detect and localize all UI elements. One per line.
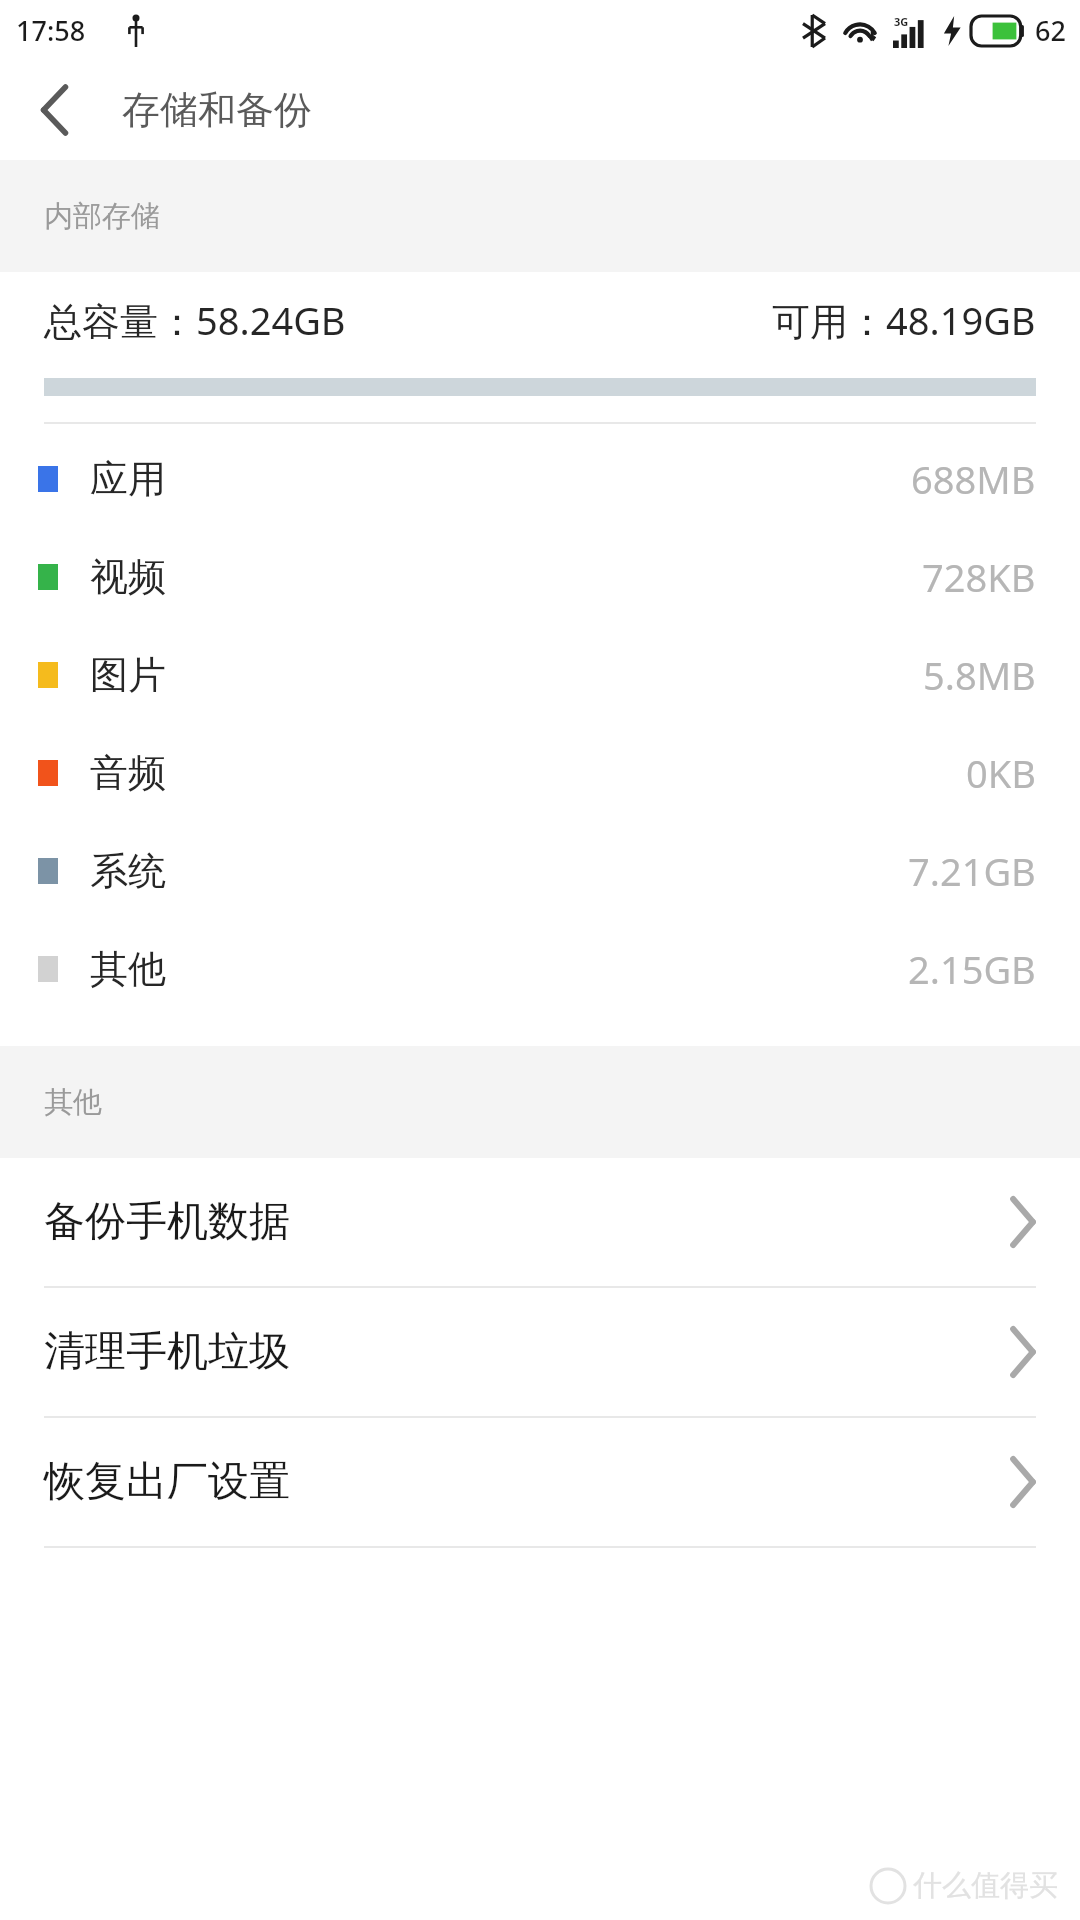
staticText: 系统 xyxy=(90,847,166,895)
staticText: 可用：48.19GB xyxy=(772,294,1036,346)
staticText: 应用 xyxy=(90,455,166,503)
staticText: 0KB xyxy=(966,747,1036,799)
button[interactable]: 其他 xyxy=(0,920,1080,1018)
staticText: 视频 xyxy=(90,553,166,601)
button[interactable]: 清理手机垃圾 xyxy=(0,1288,1080,1416)
staticText: 图片 xyxy=(90,651,166,699)
staticText: 688MB xyxy=(911,453,1036,505)
staticText: 备份手机数据 xyxy=(44,1196,290,1248)
button[interactable]: 恢复出厂设置 xyxy=(0,1418,1080,1546)
staticText: 恢复出厂设置 xyxy=(44,1456,290,1508)
staticText: 17:58 xyxy=(16,12,86,49)
staticText: 3G xyxy=(894,14,909,29)
staticText: 内部存储 xyxy=(44,198,160,235)
button[interactable]: 图片 xyxy=(0,626,1080,724)
staticText: 其他 xyxy=(44,1084,102,1121)
staticText: 其他 xyxy=(90,945,166,993)
staticText: 存储和备份 xyxy=(122,86,312,134)
button[interactable]: 备份手机数据 xyxy=(0,1158,1080,1286)
staticText: 总容量：58.24GB xyxy=(44,294,346,346)
staticText: 728KB xyxy=(922,551,1036,603)
button[interactable]: 音频 xyxy=(0,724,1080,822)
button[interactable]: Back xyxy=(16,71,94,149)
staticText: 62 xyxy=(1035,12,1066,49)
staticText: 什么值得买 xyxy=(913,1867,1058,1904)
button[interactable]: 视频 xyxy=(0,528,1080,626)
staticText: 7.21GB xyxy=(908,845,1036,897)
staticText: 清理手机垃圾 xyxy=(44,1326,290,1378)
button[interactable]: 应用 xyxy=(0,430,1080,528)
staticText: 5.8MB xyxy=(923,649,1036,701)
staticText: 音频 xyxy=(90,749,166,797)
button[interactable]: 系统 xyxy=(0,822,1080,920)
staticText: 2.15GB xyxy=(908,943,1036,995)
